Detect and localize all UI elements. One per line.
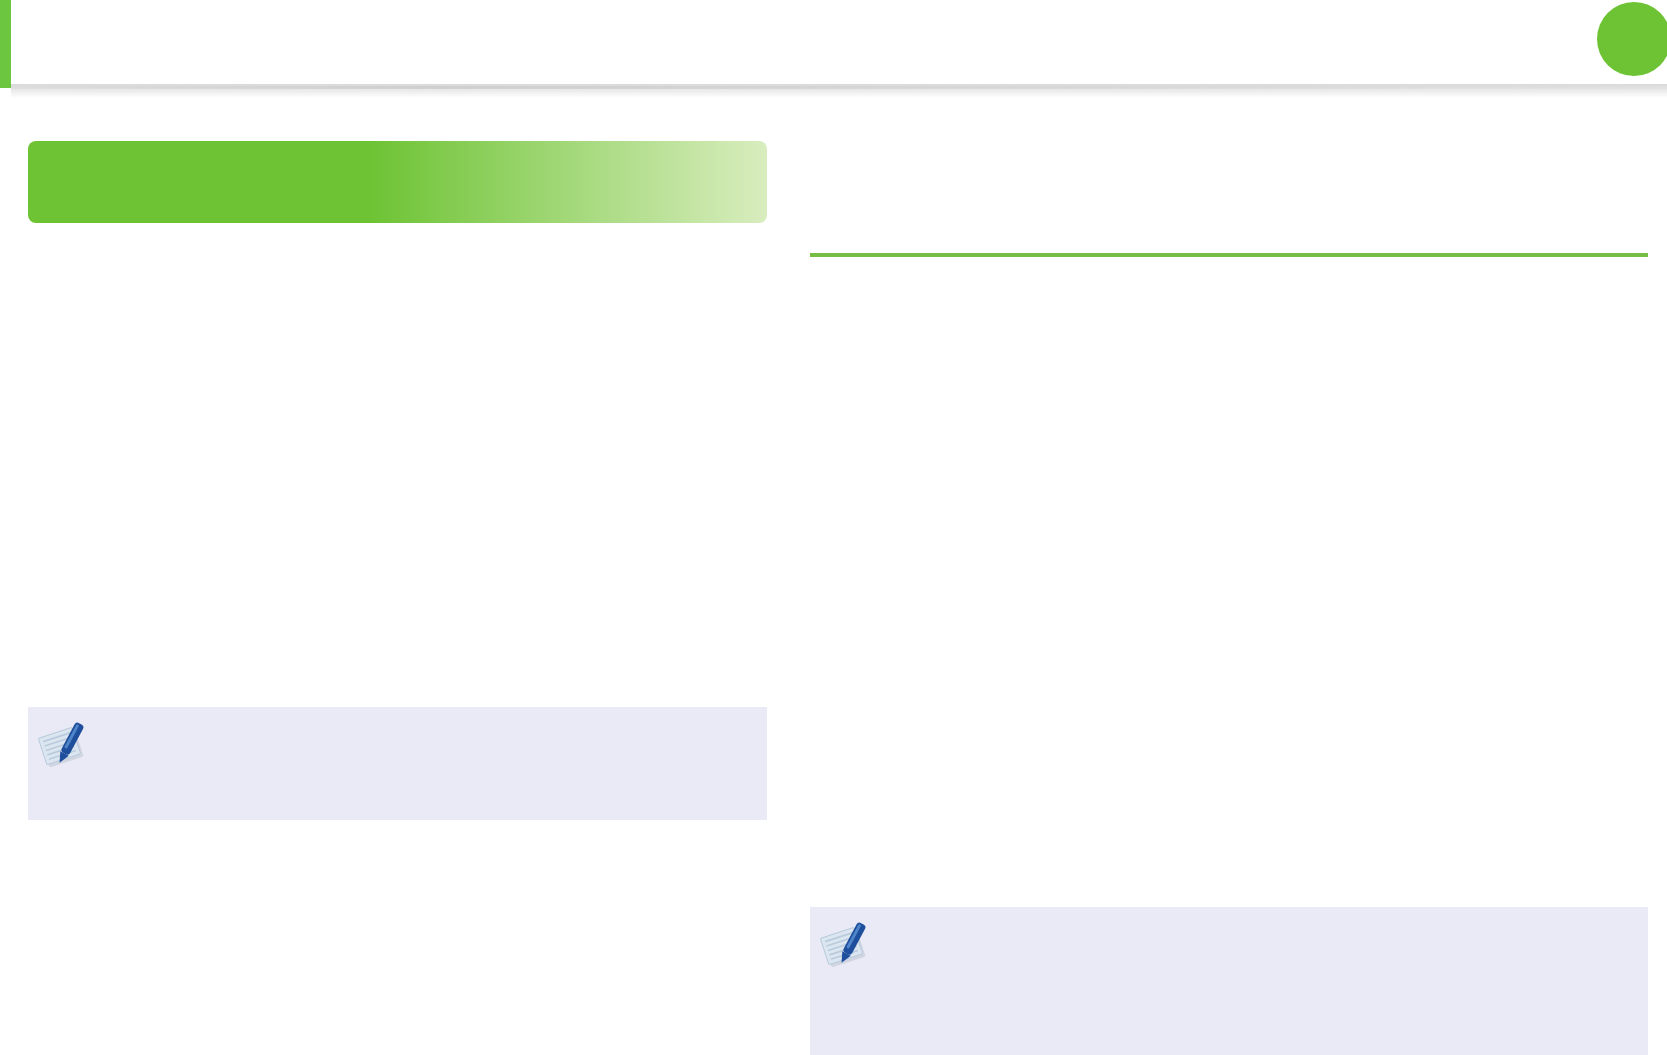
- button[interactable]: [28, 141, 767, 223]
- button[interactable]: [810, 907, 1648, 1055]
- button[interactable]: Chapter badge: [1597, 2, 1667, 76]
- button[interactable]: [28, 707, 767, 820]
